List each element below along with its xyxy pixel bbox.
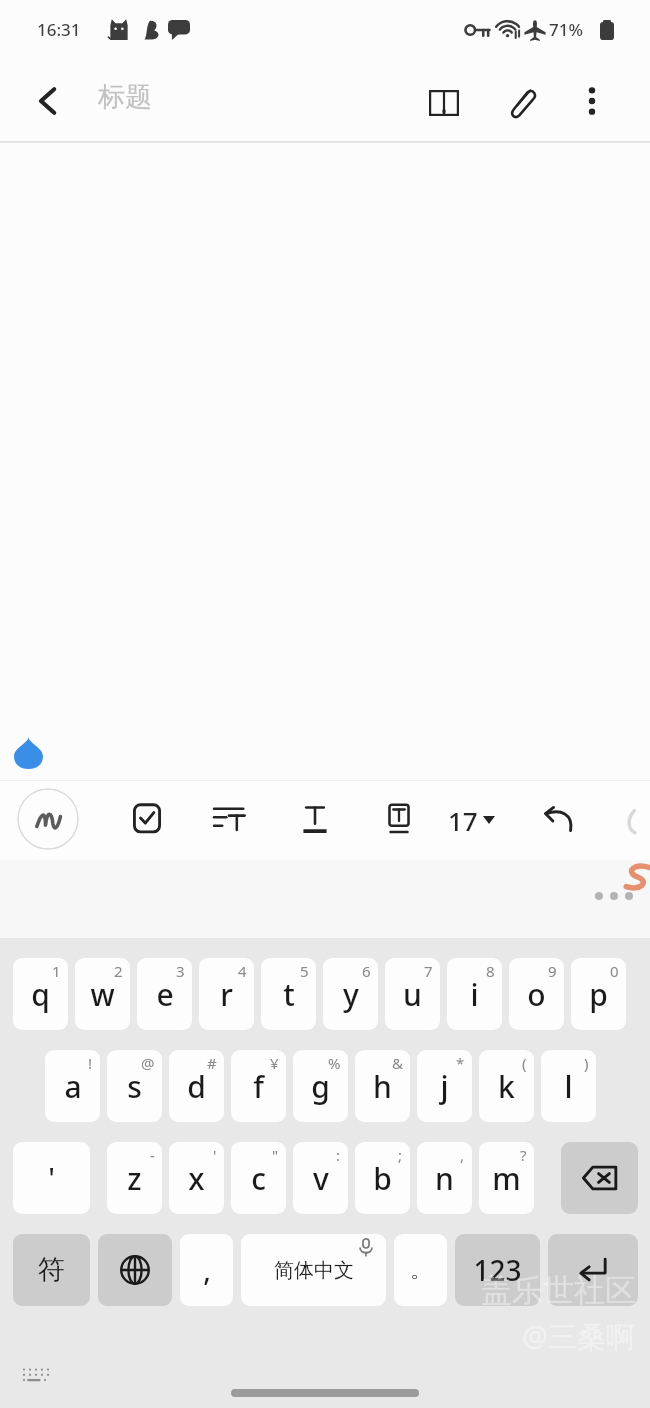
button[interactable]: 简体中文 — [241, 1234, 386, 1306]
staticText: 7 — [424, 961, 433, 981]
button[interactable]: e — [137, 958, 192, 1030]
staticText: # — [207, 1053, 217, 1073]
staticText: q — [31, 974, 50, 1015]
button[interactable]: i — [447, 958, 502, 1030]
staticText: ! — [88, 1053, 93, 1073]
button[interactable]: Text box — [370, 790, 428, 848]
staticText: i — [470, 974, 479, 1015]
button[interactable]: g — [293, 1050, 348, 1122]
staticText: 5 — [300, 961, 309, 981]
button[interactable]: m — [479, 1142, 534, 1214]
button[interactable]: f — [231, 1050, 286, 1122]
button[interactable]: Handwriting — [17, 788, 79, 850]
button[interactable]: u — [385, 958, 440, 1030]
staticText: g — [311, 1066, 330, 1107]
staticText: z — [127, 1158, 142, 1199]
staticText: 9 — [548, 961, 557, 981]
staticText: 16:31 — [37, 18, 81, 41]
staticText: 17 — [448, 803, 478, 838]
staticText: p — [589, 974, 608, 1015]
staticText: r — [220, 974, 233, 1015]
button[interactable]: 123 — [455, 1234, 540, 1306]
button[interactable]: n — [417, 1142, 472, 1214]
staticText: o — [527, 974, 546, 1015]
button[interactable]: ' — [13, 1142, 90, 1214]
staticText: b — [373, 1158, 392, 1199]
staticText: w — [90, 974, 115, 1015]
staticText: 标题 — [98, 80, 152, 114]
staticText: 4 — [238, 961, 247, 981]
staticText: x — [188, 1158, 205, 1199]
button[interactable]: q — [13, 958, 68, 1030]
staticText: ; — [398, 1145, 403, 1165]
staticText: ' — [48, 1159, 55, 1197]
button[interactable]: p — [571, 958, 626, 1030]
staticText: 简体中文 — [274, 1258, 354, 1283]
staticText: 123 — [473, 1251, 522, 1289]
staticText: s — [127, 1066, 142, 1107]
button[interactable]: w — [75, 958, 130, 1030]
button[interactable]: 符 — [13, 1234, 90, 1306]
button[interactable]: d — [169, 1050, 224, 1122]
button[interactable]: Switch language — [98, 1234, 172, 1306]
staticText: " — [272, 1145, 279, 1165]
button[interactable]: Back — [24, 77, 72, 125]
staticText: 6 — [362, 961, 371, 981]
button[interactable]: Text style — [286, 790, 344, 848]
staticText: m — [492, 1158, 521, 1199]
button[interactable]: c — [231, 1142, 286, 1214]
staticText: ? — [520, 1145, 527, 1165]
button[interactable]: More options — [568, 77, 616, 125]
button[interactable]: r — [199, 958, 254, 1030]
button[interactable]: Paragraph style — [200, 790, 258, 848]
button[interactable]: s — [107, 1050, 162, 1122]
staticText: h — [373, 1066, 392, 1107]
staticText: : — [336, 1145, 341, 1165]
button[interactable]: 。 — [394, 1234, 447, 1306]
staticText: l — [564, 1066, 573, 1107]
staticText: 0 — [610, 961, 619, 981]
staticText: 1 — [52, 961, 61, 981]
staticText: v — [313, 1158, 329, 1199]
staticText: @ — [141, 1053, 155, 1073]
staticText: t — [283, 974, 295, 1015]
staticText: e — [156, 974, 174, 1015]
staticText: n — [435, 1158, 454, 1199]
button[interactable]: Enter — [548, 1234, 638, 1306]
button[interactable]: z — [107, 1142, 162, 1214]
staticText: a — [64, 1066, 82, 1107]
staticText: @三桑啊 — [522, 1316, 636, 1356]
button[interactable]: Hide keyboard — [10, 1348, 62, 1400]
staticText: 。 — [410, 1256, 432, 1284]
staticText: f — [253, 1066, 264, 1107]
staticText: - — [150, 1145, 155, 1165]
button[interactable] — [231, 1389, 419, 1397]
button[interactable]: t — [261, 958, 316, 1030]
button[interactable]: x — [169, 1142, 224, 1214]
staticText: 8 — [486, 961, 495, 981]
staticText: k — [498, 1066, 515, 1107]
button[interactable]: Reading mode — [418, 77, 470, 129]
button[interactable]: Checklist — [118, 790, 176, 848]
button[interactable]: b — [355, 1142, 410, 1214]
staticText: u — [403, 974, 422, 1015]
button[interactable]: , — [180, 1234, 233, 1306]
button[interactable]: y — [323, 958, 378, 1030]
button[interactable]: o — [509, 958, 564, 1030]
button[interactable]: h — [355, 1050, 410, 1122]
staticText: d — [187, 1066, 206, 1107]
button[interactable]: Undo — [530, 790, 588, 848]
button[interactable]: a — [45, 1050, 100, 1122]
button[interactable]: k — [479, 1050, 534, 1122]
button[interactable]: l — [541, 1050, 596, 1122]
staticText: 3 — [176, 961, 185, 981]
button[interactable]: j — [417, 1050, 472, 1122]
staticText: ( — [522, 1053, 527, 1073]
staticText: , — [460, 1145, 465, 1165]
staticText: 71% — [549, 18, 583, 41]
button[interactable]: 17 — [442, 797, 501, 843]
button[interactable]: Backspace — [561, 1142, 638, 1214]
staticText: , — [203, 1251, 211, 1289]
button[interactable]: v — [293, 1142, 348, 1214]
button[interactable]: Attach — [497, 77, 549, 129]
